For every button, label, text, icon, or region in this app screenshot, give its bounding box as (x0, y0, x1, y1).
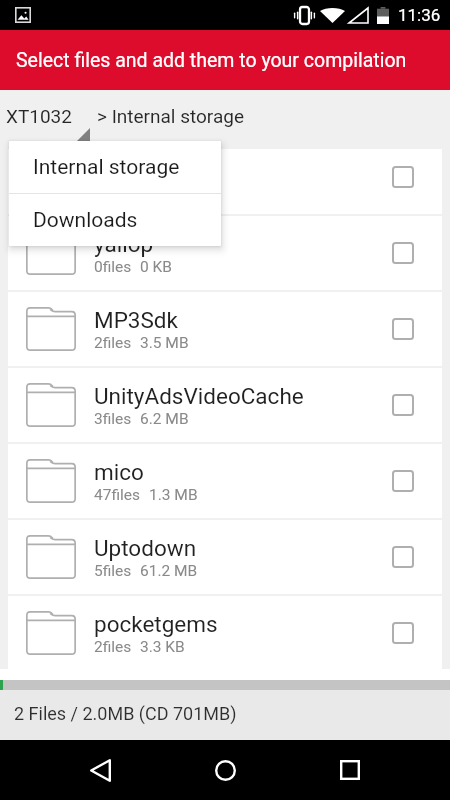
button[interactable]: Recent apps (320, 740, 380, 800)
staticText: Downloads (94, 155, 206, 181)
staticText: 0 KB (140, 258, 172, 276)
button[interactable]: Downloads (8, 149, 442, 214)
staticText: 2files (94, 334, 132, 352)
button[interactable]: Select mico (381, 459, 425, 503)
button[interactable]: Select yallop (381, 231, 425, 275)
button[interactable]: Select pocketgems (381, 611, 425, 655)
staticText: 61.2 MB (140, 562, 198, 580)
staticText: 3.3 KB (140, 638, 185, 656)
staticText: Select files and add them to your compil… (16, 49, 407, 72)
staticText: 47files (94, 486, 141, 504)
staticText: 0files (94, 258, 132, 276)
button[interactable]: XT1032 (0, 90, 92, 149)
button[interactable]: Home (195, 740, 255, 800)
staticText: Internal storage (33, 155, 180, 180)
button[interactable]: yallop (8, 216, 442, 290)
staticText: yallop (94, 231, 154, 257)
staticText: MP3Sdk (94, 307, 178, 333)
staticText: pocketgems (94, 611, 218, 637)
button[interactable]: Select Downloads (381, 155, 425, 199)
button[interactable]: UnityAdsVideoCache (8, 368, 442, 442)
staticText: XT1032 (6, 105, 72, 127)
button[interactable]: pocketgems (8, 596, 442, 669)
staticText: 12 KB (140, 182, 181, 200)
button[interactable]: Select UnityAdsVideoCache (381, 383, 425, 427)
staticText: UnityAdsVideoCache (94, 383, 304, 409)
other: Screenshot captured (15, 7, 31, 23)
button[interactable]: Downloads (9, 194, 221, 246)
staticText: 5files (94, 562, 132, 580)
staticText: 3.5 MB (140, 334, 189, 352)
button[interactable]: Uptodown (8, 520, 442, 594)
staticText: 1.3 MB (149, 486, 198, 504)
staticText: 6.2 MB (140, 410, 189, 428)
staticText: 11:36 (398, 5, 441, 25)
staticText: Downloads (33, 208, 138, 233)
button[interactable]: Select MP3Sdk (381, 307, 425, 351)
button[interactable]: mico (8, 444, 442, 518)
staticText: 2files (94, 638, 132, 656)
staticText: 4files (94, 182, 132, 200)
button[interactable]: Back (70, 740, 130, 800)
button[interactable]: MP3Sdk (8, 292, 442, 366)
button[interactable]: Select Uptodown (381, 535, 425, 579)
staticText: Uptodown (94, 535, 197, 561)
staticText: 2 Files / 2.0MB (CD 701MB) (14, 703, 237, 724)
button[interactable]: Internal storage (9, 141, 221, 193)
staticText: 3files (94, 410, 132, 428)
staticText: mico (94, 459, 144, 485)
staticText: > Internal storage (97, 105, 245, 127)
